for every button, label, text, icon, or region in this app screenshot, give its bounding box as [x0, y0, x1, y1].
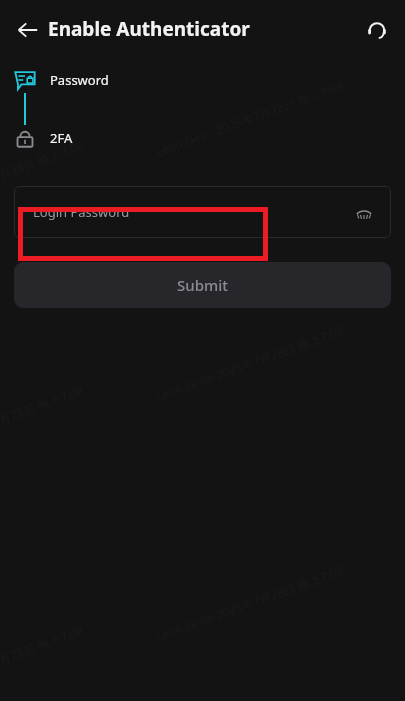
button[interactable]: Submit [14, 262, 391, 308]
button[interactable]: Login Password [14, 186, 391, 238]
button[interactable]: Show password [347, 195, 381, 229]
staticText: Leon Dean 2025年7月28日 晚上7:08 [0, 136, 86, 220]
button[interactable]: Customer support [355, 8, 399, 52]
staticText: Enable Authenticator [48, 16, 250, 42]
staticText: 2FA [50, 129, 73, 147]
staticText: Submit [177, 275, 228, 295]
button[interactable]: Back [6, 8, 50, 52]
staticText: Password [50, 71, 109, 89]
staticText: Login Password [33, 203, 130, 221]
